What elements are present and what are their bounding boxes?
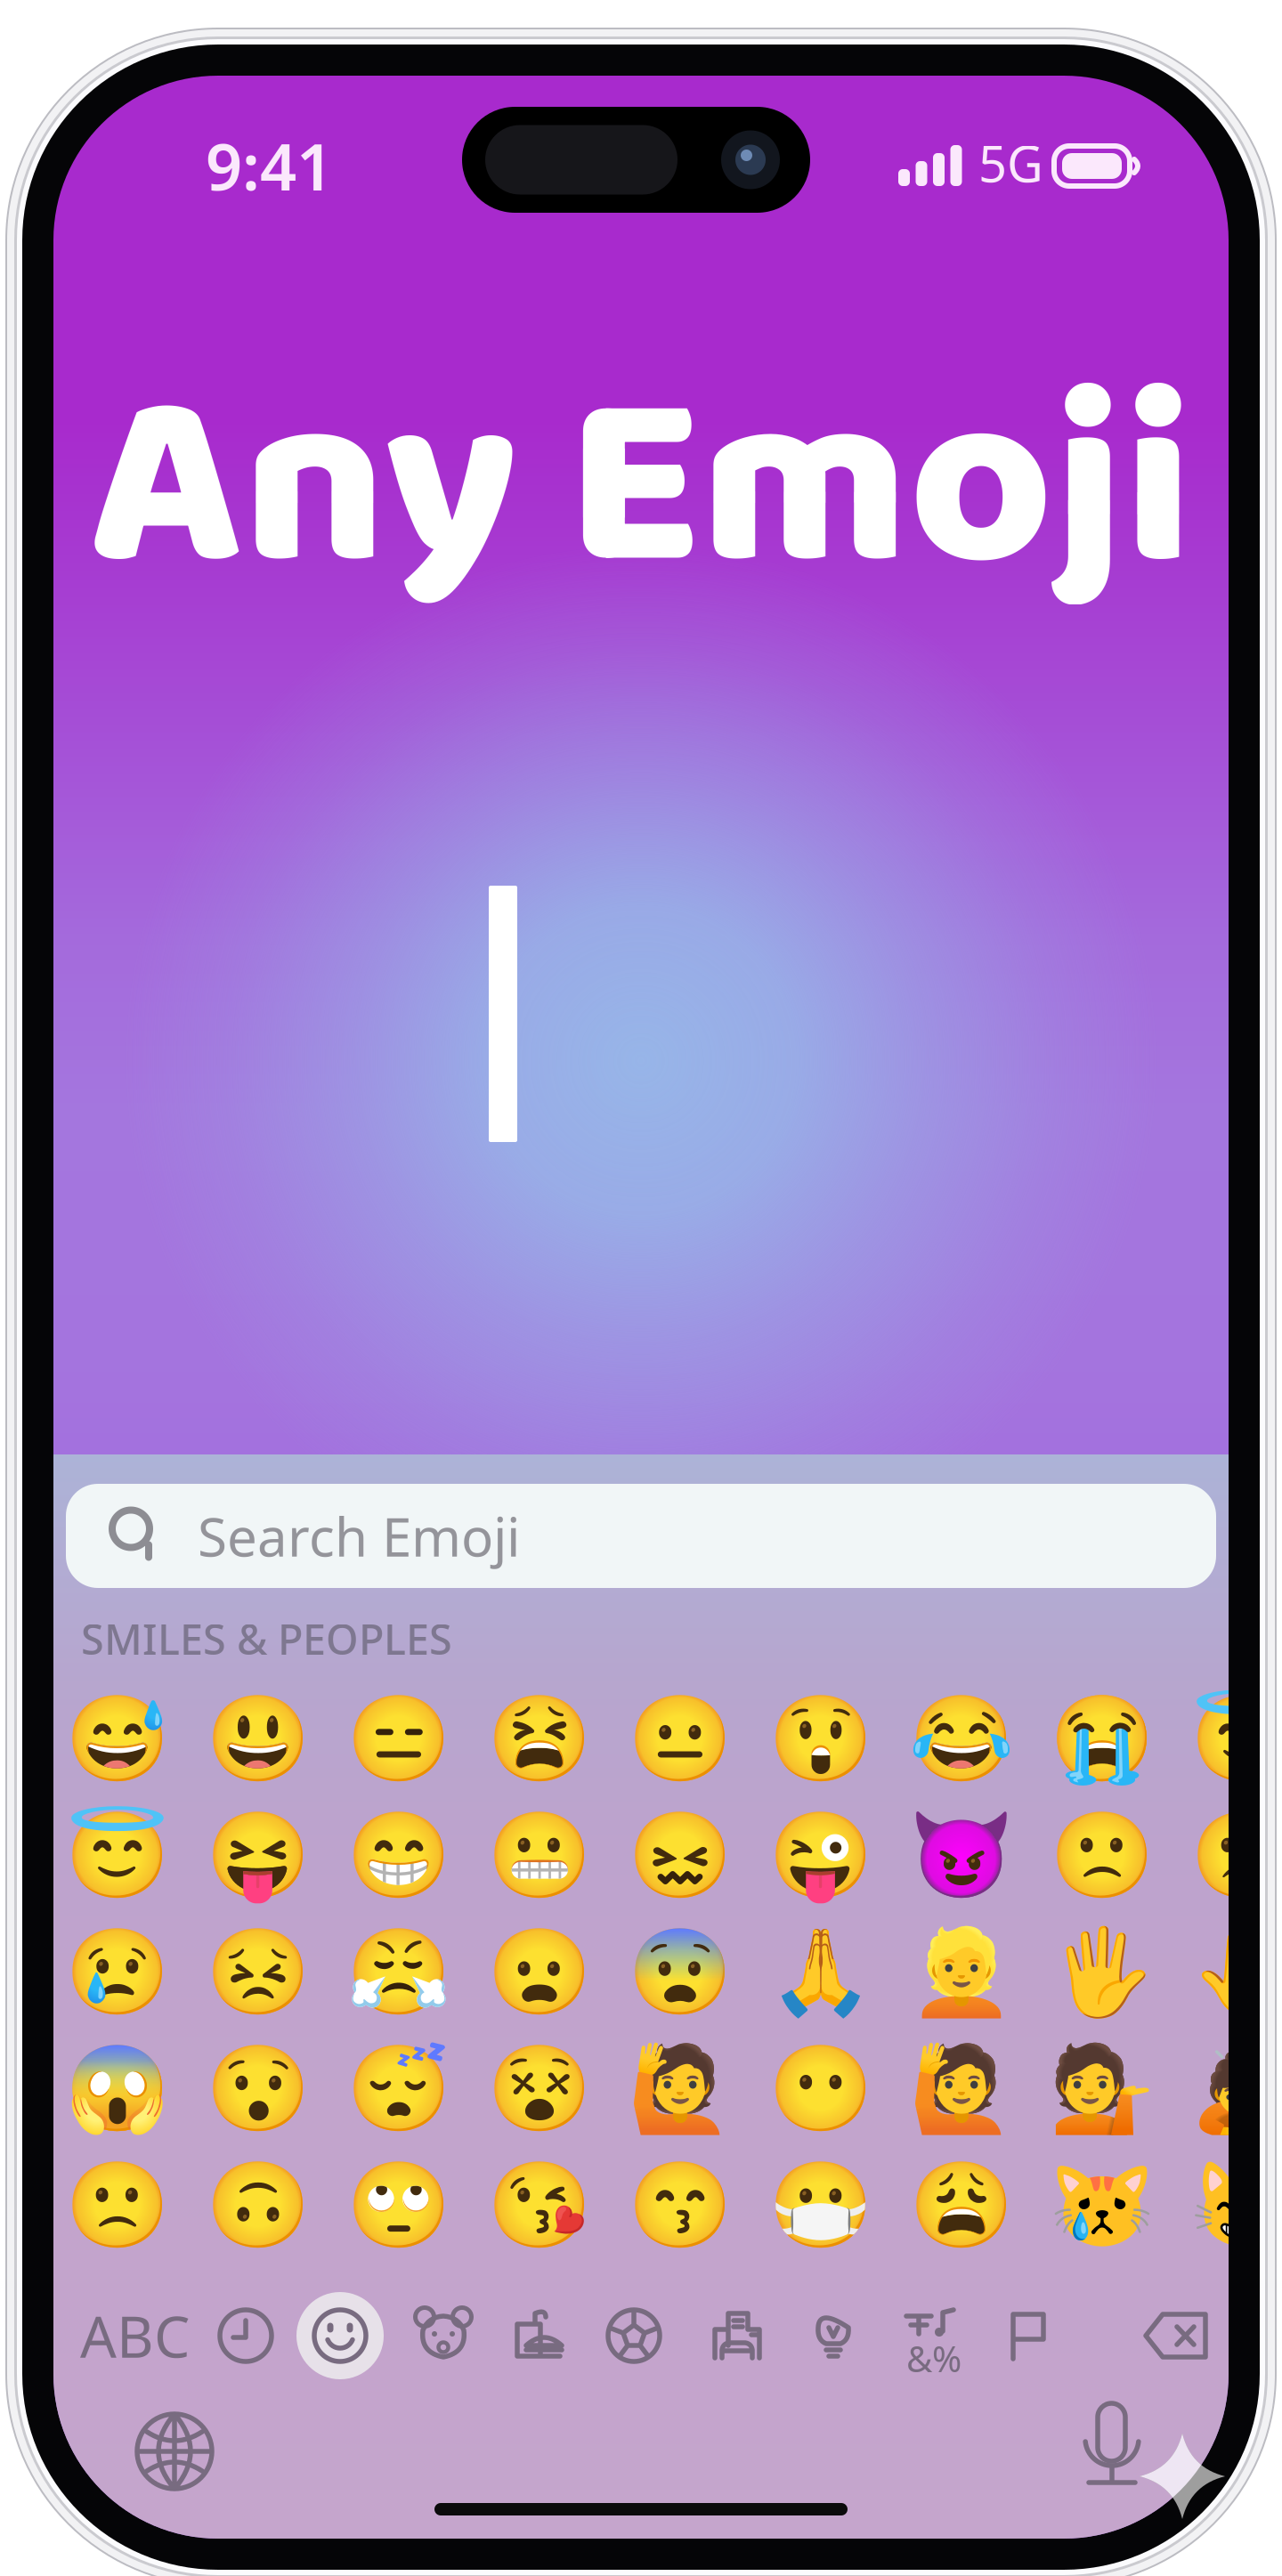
button[interactable]: Emoji [751, 1914, 891, 2030]
button[interactable]: Emoji [891, 2030, 1032, 2147]
staticText: 🤚 [1190, 1924, 1282, 2020]
button[interactable]: Smileys and people [296, 2292, 384, 2379]
button[interactable]: Emoji [469, 1681, 610, 1797]
button[interactable]: Emoji [329, 1797, 469, 1914]
button[interactable]: Emoji [1032, 1914, 1172, 2030]
staticText: 😬 [487, 1807, 592, 1904]
button[interactable]: Dictate [1082, 2402, 1142, 2491]
button[interactable]: Travel and places [694, 2292, 781, 2379]
button[interactable]: Emoji [329, 1681, 469, 1797]
button[interactable]: Emoji [891, 1914, 1032, 2030]
button[interactable]: Emoji [188, 1797, 329, 1914]
button[interactable]: Emoji [751, 1681, 891, 1797]
staticText: &% [906, 2335, 961, 2382]
staticText: 😫 [487, 1691, 592, 1787]
staticText: 😿 [1050, 2157, 1155, 2253]
button[interactable]: Emoji [891, 1681, 1032, 1797]
button[interactable]: Emoji [188, 1681, 329, 1797]
button[interactable]: Emoji [329, 2147, 469, 2264]
staticText: 🙄 [346, 2157, 451, 2253]
staticText: 😖 [628, 1807, 733, 1904]
staticText: SMILES & PEOPLES [81, 1611, 452, 1666]
button[interactable]: Emoji [469, 2030, 610, 2147]
staticText: 🙋 [909, 2041, 1014, 2137]
staticText: 😲 [768, 1691, 873, 1787]
button[interactable]: Emoji [610, 1681, 751, 1797]
button[interactable]: Emoji [469, 1797, 610, 1914]
button[interactable]: Emoji [47, 1797, 188, 1914]
button[interactable]: Emoji [47, 1914, 188, 2030]
button[interactable]: Emoji [1032, 2147, 1172, 2264]
staticText: 🙁 [65, 2157, 170, 2253]
staticText: 😯 [206, 2041, 311, 2137]
button[interactable]: Recently used [202, 2292, 289, 2379]
button[interactable]: Emoji [751, 2147, 891, 2264]
staticText: 😇 [65, 1807, 170, 1904]
button[interactable]: Emoji [469, 2147, 610, 2264]
staticText: 🖐 [1050, 1924, 1155, 2020]
button[interactable]: Emoji [47, 1681, 188, 1797]
button[interactable]: Switch keyboard [134, 2410, 215, 2492]
staticText: 😭 [1050, 1691, 1155, 1787]
staticText: 👱 [909, 1924, 1014, 2020]
staticText: 😵 [487, 2041, 592, 2137]
button[interactable]: Emoji [1172, 2030, 1282, 2147]
staticText: 💁 [1050, 2041, 1155, 2137]
button[interactable]: Emoji [1032, 2030, 1172, 2147]
button[interactable]: Emoji [188, 2030, 329, 2147]
button[interactable]: Emoji [47, 2147, 188, 2264]
staticText: 😢 [65, 1924, 170, 2020]
button[interactable]: Emoji [329, 1914, 469, 2030]
staticText: ABC [80, 2298, 190, 2373]
staticText: 😩 [909, 2157, 1014, 2253]
button[interactable]: Emoji [610, 1797, 751, 1914]
button[interactable]: Emoji [751, 2030, 891, 2147]
button[interactable]: Emoji [188, 2147, 329, 2264]
button[interactable]: Emoji [1172, 2147, 1282, 2264]
button[interactable]: Emoji [891, 2147, 1032, 2264]
staticText: 😴 [346, 2041, 451, 2137]
button[interactable]: Emoji [1032, 1681, 1172, 1797]
staticText: 😕 [1190, 1807, 1282, 1904]
staticText: 🙁 [1050, 1807, 1155, 1904]
button[interactable]: Emoji [469, 1914, 610, 2030]
button[interactable]: Emoji [891, 1797, 1032, 1914]
button[interactable]: Symbols [888, 2292, 976, 2379]
button[interactable]: Emoji [1172, 1681, 1282, 1797]
button[interactable]: Emoji [610, 2147, 751, 2264]
staticText: 🙃 [206, 2157, 311, 2253]
button[interactable]: Food and drink [496, 2292, 583, 2379]
staticText: 😘 [487, 2157, 592, 2253]
staticText: 😤 [346, 1924, 451, 2020]
button[interactable]: Emoji [610, 1914, 751, 2030]
staticText: 😨 [628, 1924, 733, 2020]
staticText: 😇 [1190, 1691, 1282, 1787]
button[interactable]: Emoji [1032, 1797, 1172, 1914]
staticText: 😐 [628, 1691, 733, 1787]
button[interactable]: Flags [985, 2292, 1072, 2379]
button[interactable]: Objects [790, 2292, 877, 2379]
staticText: 😷 [768, 2157, 873, 2253]
button[interactable]: Emoji [329, 2030, 469, 2147]
button[interactable]: Emoji [47, 2030, 188, 2147]
button[interactable]: Emoji [751, 1797, 891, 1914]
staticText: 🙋 [628, 2041, 733, 2137]
button[interactable]: Emoji [1172, 1914, 1282, 2030]
staticText: 😁 [346, 1807, 451, 1904]
staticText: 5G [978, 130, 1043, 196]
staticText: 😶 [768, 2041, 873, 2137]
staticText: Search Emoji [198, 1500, 520, 1571]
button[interactable]: Animals and nature [400, 2292, 487, 2379]
button[interactable]: Delete [1133, 2292, 1221, 2379]
staticText: 🙇 [1190, 2041, 1282, 2137]
staticText: 9:41 [206, 123, 333, 208]
staticText: 😜 [768, 1807, 873, 1904]
staticText: 😃 [206, 1691, 311, 1787]
button[interactable]: Activity [590, 2292, 678, 2379]
button[interactable]: Emoji [188, 1914, 329, 2030]
button[interactable]: Emoji [1172, 1797, 1282, 1914]
button[interactable]: ABC [80, 2301, 205, 2370]
staticText: 😝 [206, 1807, 311, 1904]
staticText: 😣 [206, 1924, 311, 2020]
button[interactable]: Emoji [610, 2030, 751, 2147]
